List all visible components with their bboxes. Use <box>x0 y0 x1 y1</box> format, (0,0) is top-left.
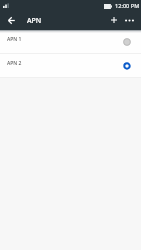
button[interactable]: APN 1 <box>0 30 141 53</box>
staticText: APN 1 <box>7 36 22 43</box>
button[interactable]: More options <box>122 13 136 27</box>
button[interactable]: Back <box>4 13 18 27</box>
button[interactable]: Add APN <box>107 13 121 27</box>
button[interactable]: APN 2 <box>0 54 141 77</box>
staticText: 12:00 PM <box>115 2 140 10</box>
staticText: APN <box>27 16 42 26</box>
staticText: APN 2 <box>7 60 22 67</box>
